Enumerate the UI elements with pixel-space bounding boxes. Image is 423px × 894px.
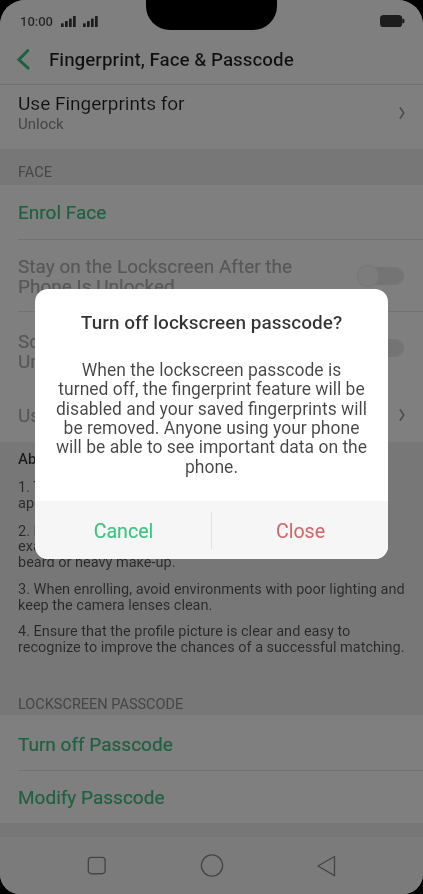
staticText: 10:00 (20, 14, 54, 29)
staticText: About Face Unlock (18, 450, 144, 468)
staticText: Unlock (18, 115, 64, 133)
staticText: When the lockscreen passcode is (35, 360, 388, 381)
staticText: Screen On Required for Face (18, 330, 258, 352)
staticText: Turn off Passcode (18, 733, 173, 755)
staticText: Turn off lockscreen passcode? (35, 311, 388, 333)
staticText: turned off, the fingerprint feature will… (35, 379, 388, 400)
button[interactable]: Recent apps (74, 841, 122, 891)
staticText: Stay on the Lockscreen After the (18, 255, 293, 277)
staticText: 1. The face data is encrypted and is acc… (18, 479, 368, 496)
button[interactable]: Switch, off (352, 334, 408, 362)
button[interactable]: Enrol Face (0, 185, 423, 240)
button[interactable]: Screen On Required for Face (0, 312, 423, 385)
staticText: 3. When enrolling, avoid environments wi… (18, 581, 405, 598)
button[interactable]: Close (212, 501, 388, 559)
staticText: FACE (18, 164, 52, 181)
button[interactable]: Turn off Passcode (0, 715, 423, 771)
staticText: Fingerprint, Face & Passcode (49, 49, 294, 71)
button[interactable]: Back (302, 841, 350, 891)
staticText: Enrol Face (18, 201, 107, 223)
staticText: Modify Passcode (18, 786, 165, 808)
staticText: Use Fingerprints for (18, 92, 185, 114)
staticText: 4. Ensure that the profile picture is cl… (18, 623, 351, 640)
staticText: approved system services on this phone. (18, 495, 281, 512)
staticText: example, when you wear glasses or grow a (18, 538, 293, 555)
button[interactable]: Use Fingerprints for (0, 84, 423, 149)
button[interactable]: Use Face Unlock for (0, 384, 423, 442)
staticText: Use Face Unlock for (18, 404, 187, 426)
staticText: LOCKSCREEN PASSCODE (18, 696, 184, 713)
staticText: Phone Is Unlocked (18, 275, 175, 297)
staticText: beard or heavy make-up. (18, 554, 176, 571)
button[interactable]: Switch, off (352, 262, 408, 290)
staticText: be removed. Anyone using your phone (35, 418, 388, 439)
staticText: phone. (35, 457, 388, 478)
staticText: Unlocking (18, 350, 102, 372)
staticText: 2. Recognition may fail if your appearan… (18, 523, 371, 540)
staticText: disabled and your saved fingerprints wil… (35, 399, 388, 420)
staticText: Close (212, 520, 388, 543)
staticText: recognize to improve the chances of a su… (18, 639, 405, 656)
button[interactable]: Home (188, 841, 236, 891)
button[interactable]: Stay on the Lockscreen After the (0, 240, 423, 312)
button[interactable]: Modify Passcode (0, 771, 423, 824)
button[interactable]: Navigate up (0, 36, 46, 84)
button[interactable]: Cancel (35, 501, 212, 559)
staticText: keep the camera lenses clean. (18, 597, 213, 614)
staticText: will be able to see important data on th… (35, 437, 388, 458)
staticText: Cancel (35, 520, 212, 543)
